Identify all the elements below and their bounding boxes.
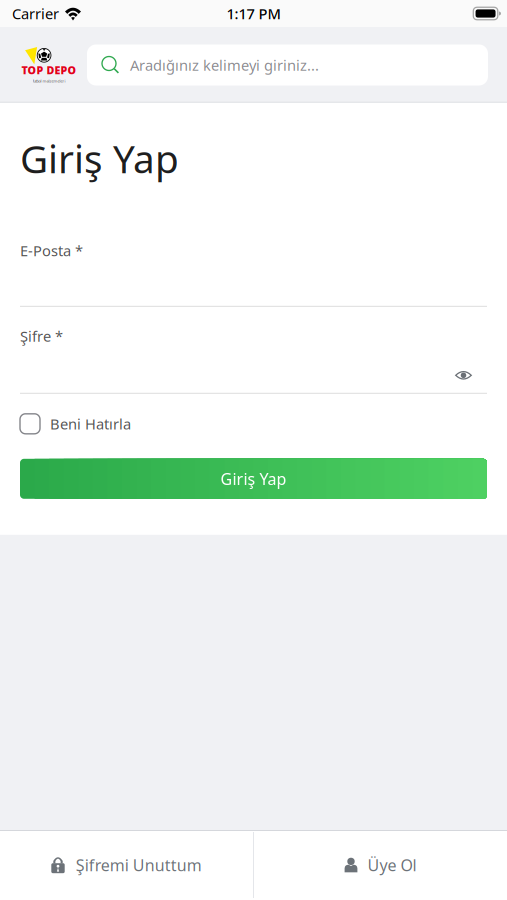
staticText: Carrier [12,4,59,23]
button[interactable]: Giriş Yap [20,459,487,499]
button[interactable]: Aradığınız kelimeyi giriniz... [87,44,488,85]
staticText: Şifremi Unuttum [76,854,202,876]
button[interactable]: Show password [451,366,487,385]
staticText: futbol malzemeleri [32,78,65,83]
button[interactable]: Şifremi Unuttum [0,830,253,900]
button[interactable]: Üye Ol [254,830,507,900]
staticText: 1:17 PM [226,4,280,23]
staticText: Beni Hatırla [50,414,131,434]
staticText: Şifre * [20,326,63,346]
staticText: Üye Ol [367,854,416,876]
button[interactable]: Top Depo logo [0,48,77,82]
staticText: Aradığınız kelimeyi giriniz... [130,55,319,75]
staticText: E-Posta * [20,241,83,260]
staticText: Giriş Yap [20,132,179,184]
staticText: TOP DEPO [21,63,76,77]
button[interactable]: Beni Hatırla [20,414,487,434]
staticText: Giriş Yap [220,468,286,489]
